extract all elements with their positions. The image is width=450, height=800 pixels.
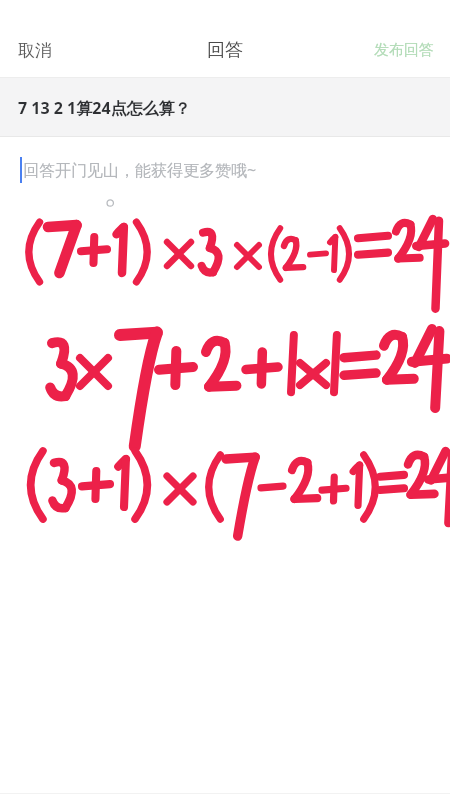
staticText: 取消	[18, 40, 52, 61]
button[interactable]: 回答开门见山，能获得更多赞哦~	[0, 137, 450, 793]
other: Handwritten answer image	[0, 193, 450, 497]
button[interactable]: 7 13 2 1算24点怎么算？	[0, 78, 450, 137]
staticText: 回答	[207, 39, 243, 62]
staticText: 7 13 2 1算24点怎么算？	[18, 97, 191, 119]
staticText: 回答开门见山，能获得更多赞哦~	[23, 159, 257, 181]
button[interactable]: 取消	[4, 30, 66, 71]
button[interactable]: 发布回答	[362, 31, 446, 70]
staticText: 发布回答	[374, 41, 434, 60]
